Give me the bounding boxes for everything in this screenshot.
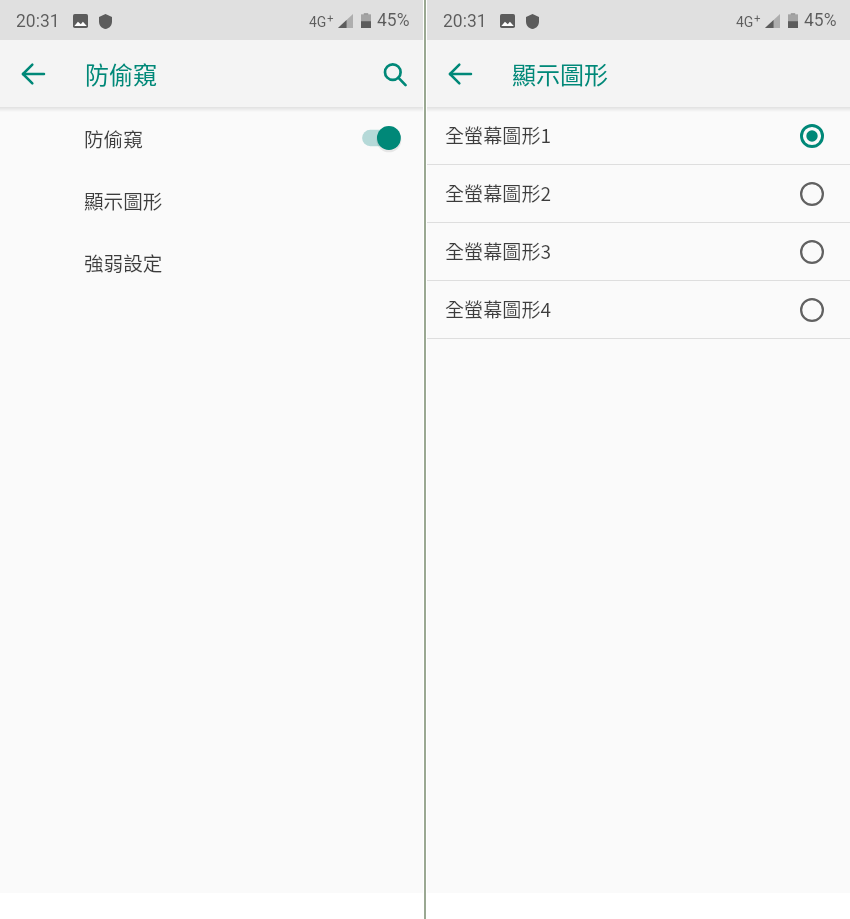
staticText: 全螢幕圖形4 [445, 295, 552, 323]
button[interactable]: 全螢幕圖形1 [427, 107, 850, 164]
staticText: 顯示圖形 [512, 56, 608, 91]
staticText: 全螢幕圖形1 [445, 121, 552, 149]
button[interactable]: Search [371, 50, 419, 98]
staticText: + [754, 11, 761, 24]
button[interactable]: 全螢幕圖形3 [788, 228, 836, 276]
button[interactable]: Toggle [360, 118, 412, 158]
button[interactable]: 全螢幕圖形4 [427, 281, 850, 338]
staticText: 45% [377, 10, 410, 31]
button[interactable]: 全螢幕圖形2 [427, 165, 850, 222]
staticText: 強弱設定 [84, 248, 163, 276]
staticText: 20:31 [443, 11, 487, 32]
button[interactable]: 全螢幕圖形3 [427, 223, 850, 280]
staticText: 防偷窺 [84, 124, 143, 152]
button[interactable]: Back [9, 50, 57, 98]
staticText: 20:31 [16, 11, 60, 32]
button[interactable]: 全螢幕圖形4 [788, 286, 836, 334]
staticText: 顯示圖形 [84, 186, 163, 214]
staticText: 4G [736, 14, 754, 30]
staticText: 4G [309, 14, 327, 30]
staticText: + [327, 11, 334, 24]
staticText: 防偷窺 [85, 56, 157, 91]
button[interactable]: Back [436, 50, 484, 98]
button[interactable]: 顯示圖形 [0, 169, 423, 231]
button[interactable]: 防偷窺 [0, 107, 423, 169]
staticText: 45% [804, 10, 837, 31]
staticText: 全螢幕圖形3 [445, 237, 552, 265]
button[interactable]: 全螢幕圖形2 [788, 170, 836, 218]
staticText: 全螢幕圖形2 [445, 179, 552, 207]
button[interactable]: 強弱設定 [0, 231, 423, 293]
button[interactable]: 全螢幕圖形1 [788, 112, 836, 160]
